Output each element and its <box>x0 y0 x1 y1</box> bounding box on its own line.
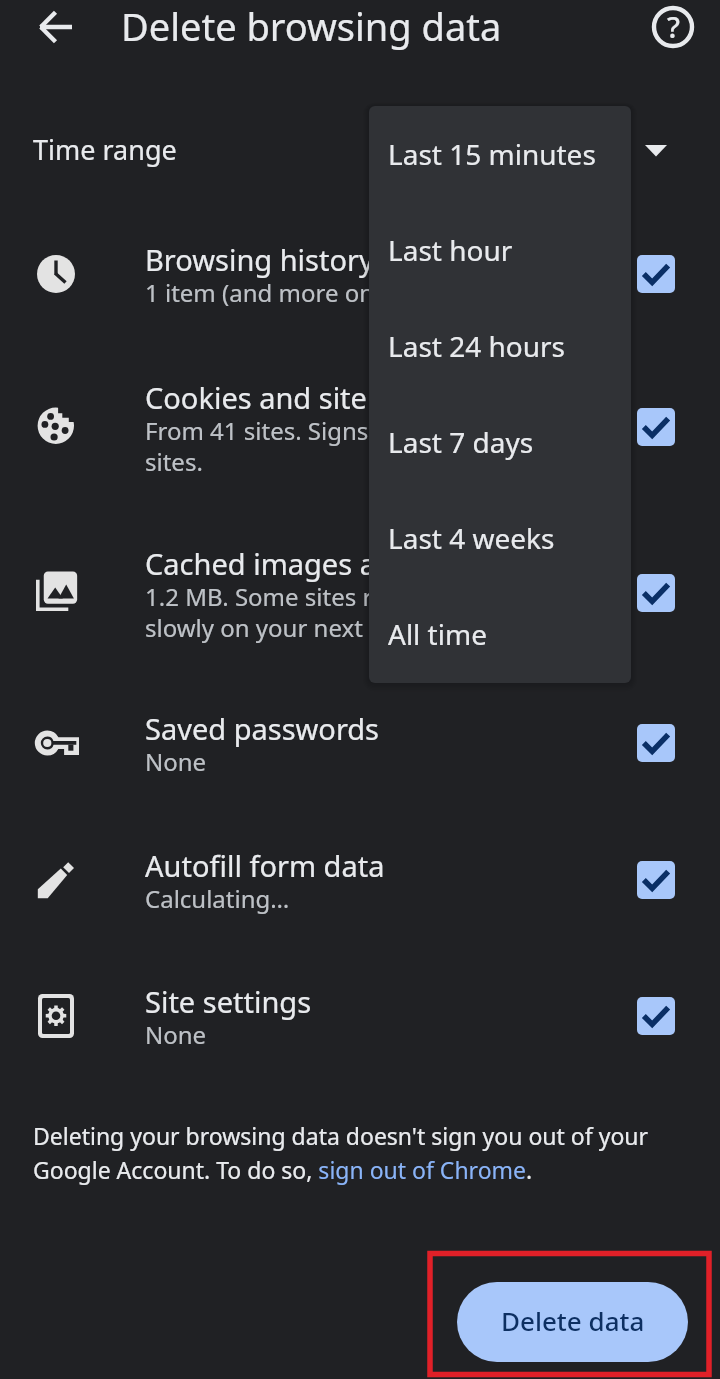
staticText: Autofill form data <box>145 846 385 885</box>
staticText: 1.2 MB. Some sites r <box>145 580 373 613</box>
button[interactable]: Delete data <box>457 1282 688 1362</box>
staticText: Saved passwords <box>145 709 380 748</box>
staticText: Browsing history <box>145 240 374 279</box>
button[interactable] <box>0 966 720 1068</box>
staticText: sites. <box>145 445 203 478</box>
button[interactable]: Toggle Cookies and site d <box>631 402 681 452</box>
staticText: slowly on your next v <box>145 611 382 644</box>
button[interactable]: Last hour <box>369 202 631 298</box>
staticText: 1 item (and more on <box>145 276 375 309</box>
staticText: All time <box>388 615 487 653</box>
staticText: Last 7 days <box>388 423 534 461</box>
button[interactable]: All time <box>369 586 631 682</box>
staticText: Calculating… <box>145 882 290 915</box>
button[interactable]: Toggle Site settings <box>631 991 681 1041</box>
button[interactable]: Toggle Browsing history <box>631 249 681 299</box>
staticText: Last 4 weeks <box>388 519 555 557</box>
staticText: Last hour <box>388 231 513 269</box>
button[interactable] <box>0 830 720 932</box>
staticText: From 41 sites. Signs <box>145 414 369 447</box>
button[interactable]: Toggle Cached images an <box>631 568 681 618</box>
button[interactable] <box>0 224 720 326</box>
staticText: Cached images an <box>145 544 394 583</box>
staticText: Time range <box>33 131 177 168</box>
staticText: ? <box>667 7 680 46</box>
button[interactable] <box>0 693 720 795</box>
button[interactable]: Time range <box>0 104 720 196</box>
button[interactable]: Toggle Saved passwords <box>631 718 681 768</box>
staticText: Delete browsing data <box>121 0 502 52</box>
staticText: Deleting your browsing data doesn't sign… <box>33 1120 665 1186</box>
button[interactable]: Last 4 weeks <box>369 490 631 586</box>
button[interactable]: Help <box>645 0 701 55</box>
staticText: None <box>145 1018 207 1051</box>
staticText: None <box>145 745 207 778</box>
staticText: Last 24 hours <box>388 327 566 365</box>
button[interactable]: Last 24 hours <box>369 298 631 394</box>
button[interactable]: Last 15 minutes <box>369 106 631 202</box>
button[interactable] <box>0 362 720 496</box>
staticText: Site settings <box>145 982 312 1021</box>
staticText: Last 15 minutes <box>388 135 596 173</box>
button[interactable]: Toggle Autofill form data <box>631 855 681 905</box>
staticText: Cookies and site d <box>145 378 393 417</box>
button[interactable]: Back <box>28 0 84 55</box>
button[interactable]: Last 7 days <box>369 394 631 490</box>
staticText: Delete data <box>501 1303 645 1338</box>
button[interactable] <box>0 528 720 662</box>
